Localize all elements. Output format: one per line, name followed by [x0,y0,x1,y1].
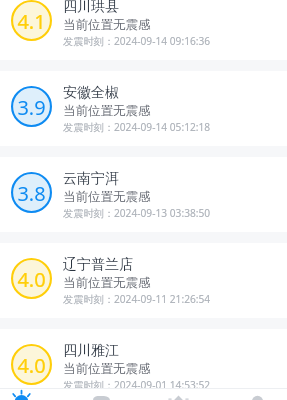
button[interactable]: 4.0 [0,329,287,400]
staticText: 四川珙县 [63,0,119,16]
button[interactable]: 3.8 [0,157,287,232]
staticText: 云南宁洱 [63,170,119,188]
button[interactable]: 我的 [228,388,287,400]
staticText: 当前位置无震感 [63,103,151,119]
staticText: 当前位置无震感 [63,17,151,33]
staticText: 发震时刻：2024-09-14 09:16:36 [63,34,211,48]
staticText: 3.8 [17,180,46,207]
button[interactable]: 3.9 [0,71,287,146]
staticText: 当前位置无震感 [63,189,151,205]
staticText: 3.9 [17,94,46,121]
button[interactable]: 预警 [62,388,141,400]
staticText: 辽宁普兰店 [63,256,133,274]
staticText: 发震时刻：2024-09-13 03:38:50 [63,206,211,220]
button[interactable]: 4.1 [0,0,287,60]
staticText: 4.0 [17,352,46,379]
staticText: 安徽全椒 [63,84,119,102]
staticText: 发震时刻：2024-09-11 21:26:54 [63,292,211,306]
staticText: 4.0 [17,266,46,293]
staticText: 当前位置无震感 [63,275,151,291]
staticText: 发震时刻：2024-09-01 14:53:52 [63,378,211,392]
button[interactable]: 速报 [142,388,215,400]
staticText: 发震时刻：2024-09-14 05:12:18 [63,120,211,134]
staticText: 当前位置无震感 [63,361,151,377]
staticText: 4.1 [17,8,46,35]
button[interactable]: 4.0 [0,243,287,318]
staticText: 四川雅江 [63,342,119,360]
button[interactable]: 天气 [0,388,43,400]
